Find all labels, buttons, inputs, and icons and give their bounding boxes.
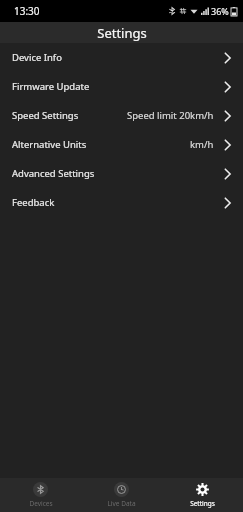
staticText: 13:30 xyxy=(14,4,40,18)
staticText: Settings xyxy=(190,499,215,508)
staticText: Device Info xyxy=(12,51,62,64)
button[interactable]: Speed Settings xyxy=(0,101,243,130)
staticText: Feedback xyxy=(12,196,55,209)
staticText: Devices xyxy=(29,499,53,508)
staticText: Advanced Settings xyxy=(12,167,95,180)
button[interactable]: Device Info xyxy=(0,43,243,72)
button[interactable]: Firmware Update xyxy=(0,72,243,101)
button[interactable]: Feedback xyxy=(0,188,243,217)
button[interactable]: Advanced Settings xyxy=(0,159,243,188)
staticText: 36% xyxy=(211,5,229,17)
button[interactable]: Settings xyxy=(162,478,243,512)
staticText: km/h xyxy=(190,138,214,151)
button[interactable]: Devices xyxy=(0,478,81,512)
staticText: Settings xyxy=(97,24,147,42)
staticText: Live Data xyxy=(107,499,136,508)
staticText: Alternative Units xyxy=(12,138,87,151)
staticText: Speed limit 20km/h xyxy=(127,109,214,122)
staticText: Speed Settings xyxy=(12,109,79,122)
button[interactable]: Alternative Units xyxy=(0,130,243,159)
button[interactable]: Live Data xyxy=(81,478,162,512)
staticText: Firmware Update xyxy=(12,80,90,93)
